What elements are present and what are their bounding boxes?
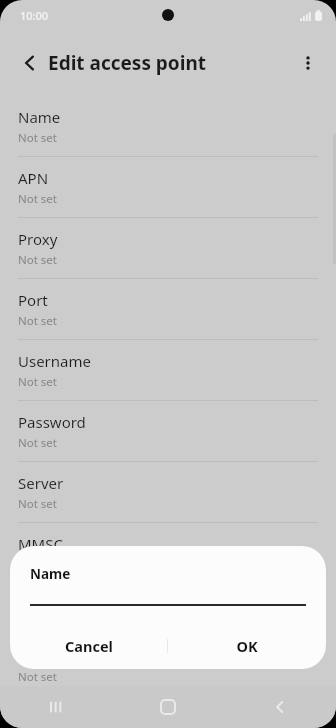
button[interactable]: Back <box>10 43 50 83</box>
staticText: 10:00 <box>20 8 49 23</box>
staticText: Proxy <box>18 229 58 249</box>
staticText: Not set <box>18 435 57 451</box>
staticText: Not set <box>18 252 57 268</box>
staticText: Port <box>18 290 48 310</box>
button[interactable]: MMS proxy <box>0 584 336 644</box>
staticText: Username <box>18 351 91 371</box>
staticText: MMS proxy <box>18 595 97 615</box>
button[interactable]: Username <box>0 340 336 400</box>
button[interactable]: MMS port <box>0 645 336 686</box>
staticText: OK <box>236 636 258 656</box>
staticText: MMSC <box>18 534 63 554</box>
staticText: Cancel <box>65 636 113 656</box>
staticText: Not set <box>18 374 57 390</box>
staticText: Not set <box>18 191 57 207</box>
button[interactable]: Password <box>0 401 336 461</box>
staticText: Not set <box>18 496 57 512</box>
button[interactable]: Recent apps <box>0 686 112 728</box>
staticText: Not set <box>18 557 57 573</box>
staticText: Server <box>18 473 64 493</box>
button[interactable]: MMSC <box>0 523 336 583</box>
button[interactable]: Cancel <box>10 623 167 669</box>
staticText: Name <box>30 565 71 583</box>
button[interactable]: APN <box>0 157 336 217</box>
staticText: Not set <box>18 313 57 329</box>
staticText: MMS port <box>18 646 88 666</box>
staticText: APN <box>18 168 49 188</box>
button[interactable]: Home <box>112 686 224 728</box>
button[interactable]: Port <box>0 279 336 339</box>
staticText: Password <box>18 412 86 432</box>
staticText: Name <box>18 107 61 127</box>
staticText: Edit access point <box>48 50 207 76</box>
button[interactable]: Name <box>0 96 336 156</box>
button[interactable]: Proxy <box>0 218 336 278</box>
button[interactable]: More options <box>288 43 328 83</box>
button[interactable]: Server <box>0 462 336 522</box>
button[interactable]: OK <box>168 623 326 669</box>
staticText: Not set <box>18 130 57 146</box>
staticText: Not set <box>18 669 57 685</box>
button[interactable]: Back <box>224 686 336 728</box>
